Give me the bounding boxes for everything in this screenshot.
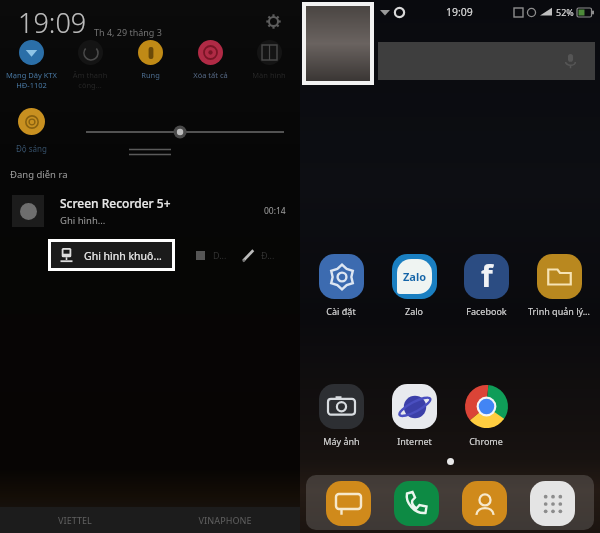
staticText: Độ sáng bbox=[16, 143, 47, 154]
staticText: Đ... bbox=[261, 249, 275, 261]
staticText: Chrome bbox=[469, 435, 503, 447]
button[interactable]: Messages bbox=[322, 477, 374, 529]
staticText: Mạng Dây KTX HĐ-1102 bbox=[6, 70, 57, 90]
button[interactable]: f bbox=[455, 253, 517, 317]
button[interactable]: Xóa tất cả bbox=[181, 40, 239, 80]
staticText: Xóa tất cả bbox=[193, 70, 228, 80]
staticText: Ghi hình khuô... bbox=[84, 249, 162, 263]
staticText: VIETTEL bbox=[0, 514, 150, 526]
staticText: Internet bbox=[397, 435, 432, 447]
staticText: Âm thanh công... bbox=[61, 70, 119, 90]
staticText: Máy ảnh bbox=[323, 435, 360, 447]
staticText: Trình quản lý... bbox=[528, 305, 590, 317]
staticText: D... bbox=[213, 249, 227, 261]
button[interactable]: Brightness bbox=[18, 108, 45, 135]
button[interactable]: Apps bbox=[526, 477, 578, 529]
button[interactable]: Settings bbox=[260, 8, 286, 34]
button[interactable]: Trình quản lý... bbox=[528, 253, 590, 317]
button[interactable]: Máy ảnh bbox=[310, 383, 372, 447]
button[interactable]: Edit bbox=[237, 244, 259, 266]
staticText: f bbox=[481, 255, 493, 296]
button[interactable]: Rung bbox=[121, 40, 179, 80]
button[interactable]: Screen Recorder 5+ bbox=[0, 188, 300, 234]
staticText: Zalo bbox=[405, 305, 423, 317]
button[interactable]: Contacts bbox=[458, 477, 510, 529]
button[interactable]: Mạng Dây KTX HĐ-1102 bbox=[2, 40, 60, 90]
staticText: 19:09 bbox=[18, 4, 87, 41]
staticText: 19:09 bbox=[446, 5, 473, 19]
button[interactable]: Screenshot preview bbox=[306, 6, 370, 81]
button[interactable]: Zalo bbox=[383, 253, 445, 317]
staticText: 52% bbox=[556, 6, 574, 18]
other: Voice search bbox=[559, 50, 581, 72]
staticText: VINAPHONE bbox=[150, 514, 300, 526]
staticText: Ghi hình... bbox=[60, 214, 106, 227]
staticText: Đang diễn ra bbox=[10, 168, 68, 181]
staticText: Th 4, 29 tháng 3 bbox=[94, 26, 162, 38]
button[interactable]: Phone bbox=[390, 477, 442, 529]
button[interactable]: Internet bbox=[383, 383, 445, 447]
staticText: Rung bbox=[141, 70, 160, 80]
button[interactable]: Chrome bbox=[455, 383, 517, 447]
staticText: Màn hình bbox=[252, 70, 286, 80]
staticText: Zalo bbox=[403, 269, 427, 284]
button[interactable]: Màn hình bbox=[240, 40, 298, 80]
button[interactable]: Cài đặt bbox=[310, 253, 372, 317]
button[interactable]: Stop bbox=[189, 244, 211, 266]
staticText: 00:14 bbox=[264, 205, 286, 217]
button[interactable]: Âm thanh công... bbox=[61, 40, 119, 90]
staticText: Cài đặt bbox=[326, 305, 356, 317]
staticText: Facebook bbox=[466, 305, 507, 317]
staticText: Screen Recorder 5+ bbox=[60, 195, 171, 211]
button[interactable]: Ghi hình khuô... bbox=[51, 242, 172, 268]
